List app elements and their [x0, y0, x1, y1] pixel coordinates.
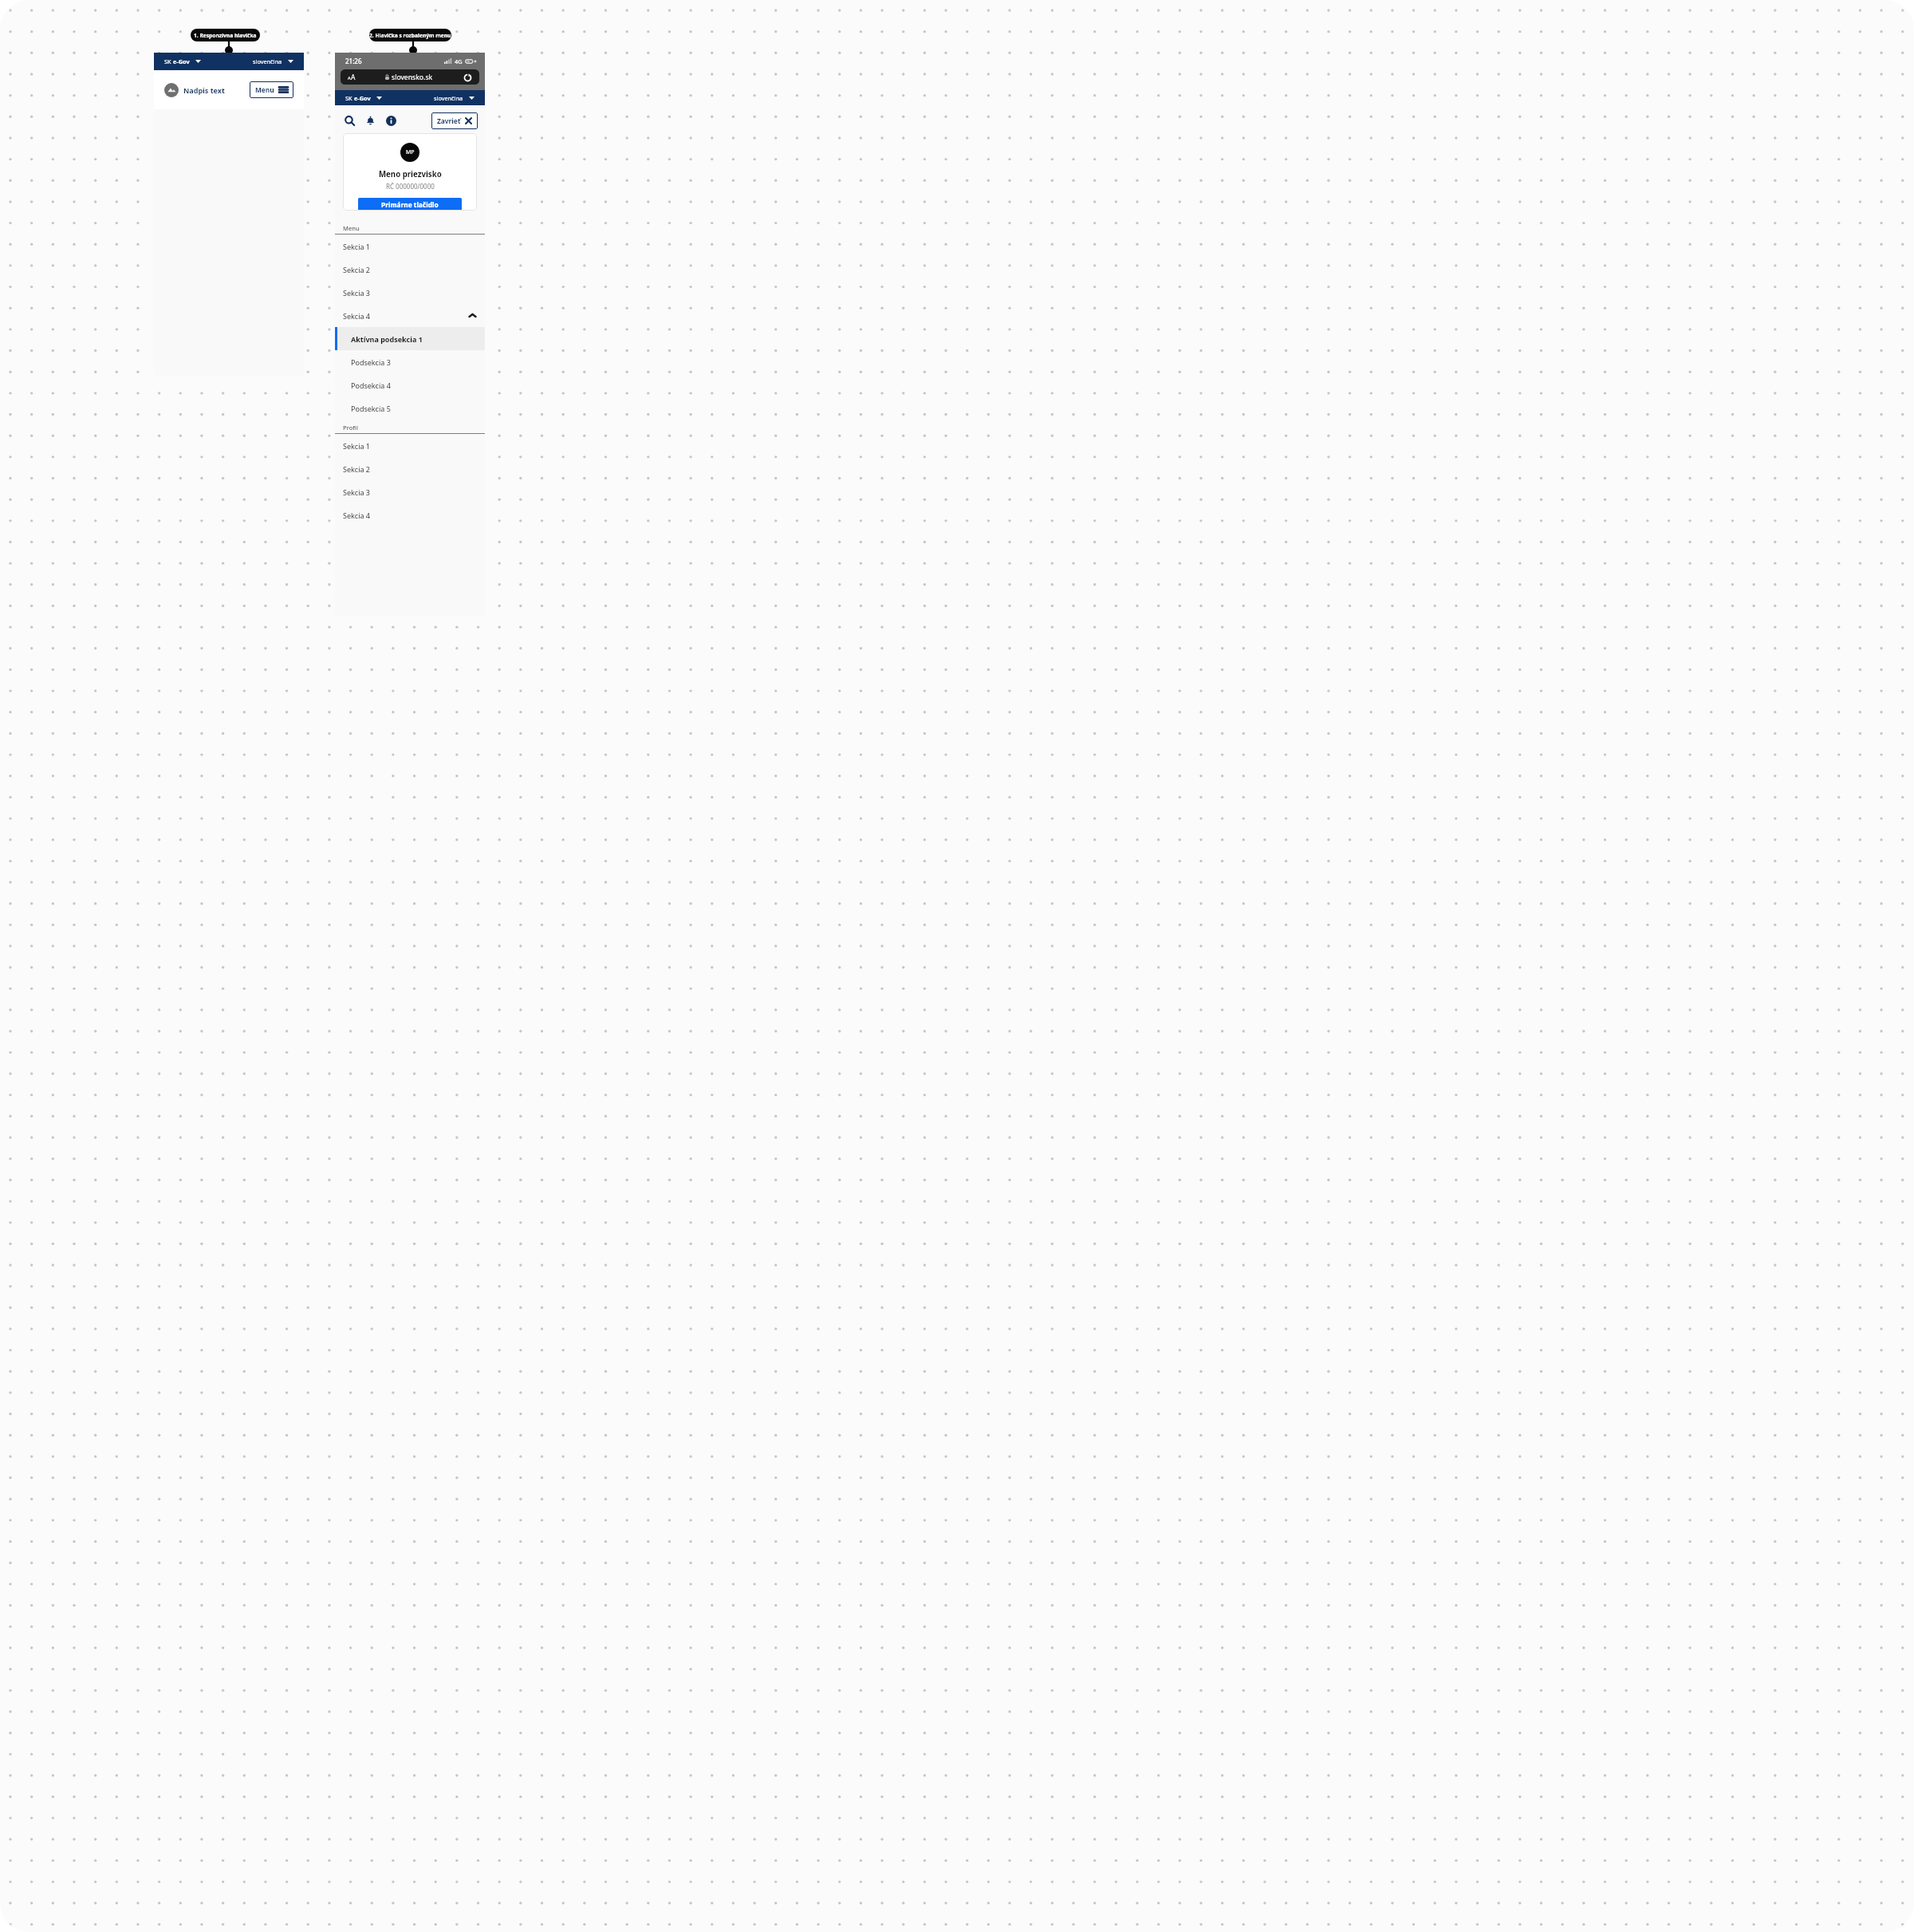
staticText: Sekcia 2 [343, 464, 371, 474]
button[interactable]: Nadpis text [164, 83, 225, 97]
staticText: 1. Responzívna hlavička [194, 32, 257, 39]
other: Collapse [468, 313, 477, 318]
button[interactable]: Sekcia 2 [335, 457, 485, 480]
staticText: Sekcia 4 [343, 311, 371, 321]
staticText: Sekcia 3 [343, 487, 371, 497]
button[interactable]: Sekcia 1 [335, 235, 485, 258]
staticText: Menu [255, 85, 274, 94]
button[interactable]: Primárne tlačidlo [358, 198, 462, 211]
staticText: Podsekcia 5 [351, 404, 391, 413]
staticText: e-Gov [173, 57, 190, 65]
staticText: Profil [343, 424, 358, 432]
staticText: Zavrieť [437, 116, 461, 125]
staticText: Podsekcia 4 [351, 380, 391, 390]
other: Open menu [279, 86, 288, 93]
button[interactable]: Podsekcia 5 [335, 396, 485, 420]
button[interactable]: Menu [250, 81, 293, 98]
staticText: slovensko.sk [392, 73, 433, 82]
staticText: Sekcia 4 [343, 511, 371, 520]
staticText: Sekcia 1 [343, 441, 371, 451]
button[interactable]: Sekcia 3 [335, 281, 485, 304]
button[interactable]: SK [164, 57, 201, 65]
staticText: Nadpis text [183, 85, 225, 95]
staticText: Menu [343, 224, 360, 232]
button[interactable]: Sekcia 3 [335, 480, 485, 503]
button[interactable]: Search [342, 113, 357, 128]
button[interactable]: Sekcia 1 [335, 434, 485, 457]
staticText: 4G [455, 57, 463, 65]
staticText: 21:26 [345, 57, 362, 65]
staticText: SK [345, 94, 354, 102]
button[interactable]: Information [384, 113, 399, 128]
button[interactable]: slovenčina [253, 57, 293, 65]
button[interactable]: Aktívna podsekcia 1 [335, 327, 485, 350]
staticText: Sekcia 1 [343, 242, 371, 251]
staticText: SK [164, 57, 173, 65]
staticText: e-Gov [354, 94, 371, 102]
other: Reload page [463, 73, 472, 81]
staticText: A [348, 75, 351, 81]
button[interactable]: Podsekcia 3 [335, 350, 485, 373]
staticText: Aktívna podsekcia 1 [351, 334, 423, 344]
staticText: 2. Hlavička s rozbaleným menu [369, 32, 451, 39]
staticText: Podsekcia 3 [351, 357, 391, 367]
staticText: Primárne tlačidlo [381, 200, 439, 209]
button[interactable]: Sekcia 4 [335, 503, 485, 526]
staticText: Sekcia 2 [343, 265, 371, 274]
button[interactable]: Notifications [363, 113, 378, 128]
button[interactable]: slovenčina [434, 94, 475, 102]
staticText: slovenčina [253, 57, 282, 65]
button[interactable]: SK [345, 94, 382, 102]
button[interactable]: Podsekcia 4 [335, 373, 485, 396]
staticText: slovenčina [434, 94, 463, 102]
button[interactable]: Zavrieť [431, 112, 478, 129]
button[interactable]: A [341, 69, 479, 85]
staticText: RČ 000000/0000 [386, 182, 435, 191]
staticText: Meno priezvisko [379, 169, 442, 179]
staticText: Sekcia 3 [343, 288, 371, 298]
staticText: MP [406, 148, 415, 156]
button[interactable]: Sekcia 2 [335, 258, 485, 281]
staticText: A [351, 73, 356, 81]
button[interactable]: Sekcia 4 [335, 304, 485, 327]
